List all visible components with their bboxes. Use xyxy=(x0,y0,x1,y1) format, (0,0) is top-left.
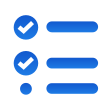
button[interactable]: Pending task xyxy=(0,0,112,112)
button[interactable]: Completed task xyxy=(0,0,112,112)
button[interactable]: Completed task xyxy=(0,0,112,112)
